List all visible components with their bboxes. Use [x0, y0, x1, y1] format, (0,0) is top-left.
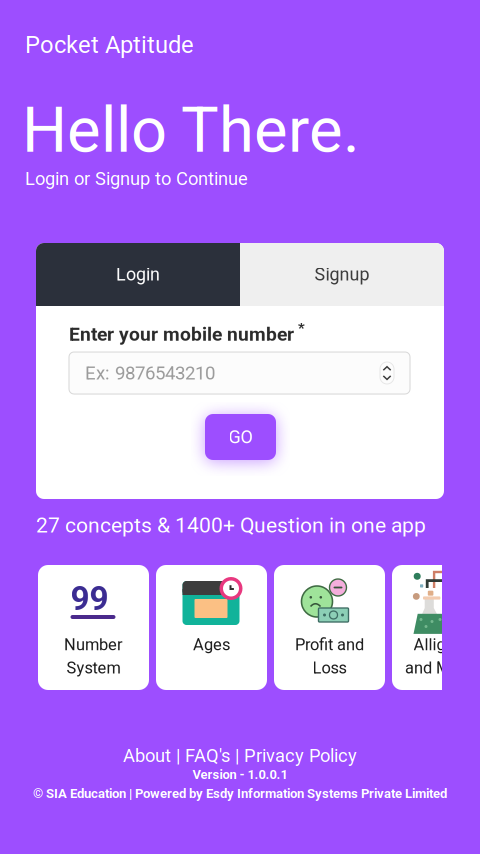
- staticText: Pocket Aptitude: [25, 31, 194, 59]
- staticText: System: [66, 658, 120, 677]
- staticText: Version - 1.0.0.1: [192, 767, 287, 782]
- staticText: Ex: 9876543210: [85, 362, 215, 384]
- staticText: Login or Signup to Continue: [25, 168, 248, 189]
- staticText: |: [230, 745, 244, 766]
- button[interactable]: FAQ's: [185, 745, 230, 766]
- button[interactable]: Ages: [156, 565, 267, 690]
- button[interactable]: Alligation: [392, 565, 480, 690]
- button[interactable]: Profit and: [274, 565, 385, 690]
- staticText: FAQ's: [185, 745, 230, 766]
- staticText: and Mixture: [405, 658, 480, 677]
- button[interactable]: Privacy Policy: [244, 745, 357, 766]
- button[interactable]: Signup: [240, 243, 444, 306]
- staticText: Loss: [312, 658, 346, 677]
- staticText: Number: [64, 635, 123, 654]
- staticText: Alligation: [413, 635, 480, 654]
- staticText: |: [171, 745, 185, 766]
- staticText: Ages: [193, 635, 230, 654]
- staticText: *: [298, 320, 305, 337]
- staticText: © SIA Education | Powered by Esdy Inform…: [33, 786, 447, 801]
- staticText: 99: [70, 579, 108, 618]
- staticText: GO: [228, 426, 252, 448]
- staticText: Privacy Policy: [244, 745, 357, 766]
- button[interactable]: GO: [205, 414, 276, 460]
- staticText: Enter your mobile number: [69, 323, 294, 345]
- button[interactable]: 99: [38, 565, 149, 690]
- button[interactable]: Login: [36, 243, 240, 306]
- staticText: Hello There.: [22, 93, 360, 167]
- staticText: Profit and: [295, 635, 364, 654]
- staticText: Login: [116, 264, 160, 285]
- button[interactable]: About: [123, 745, 171, 766]
- staticText: Signup: [314, 264, 369, 285]
- staticText: About: [123, 745, 171, 766]
- staticText: 27 concepts & 1400+ Question in one app: [36, 513, 426, 538]
